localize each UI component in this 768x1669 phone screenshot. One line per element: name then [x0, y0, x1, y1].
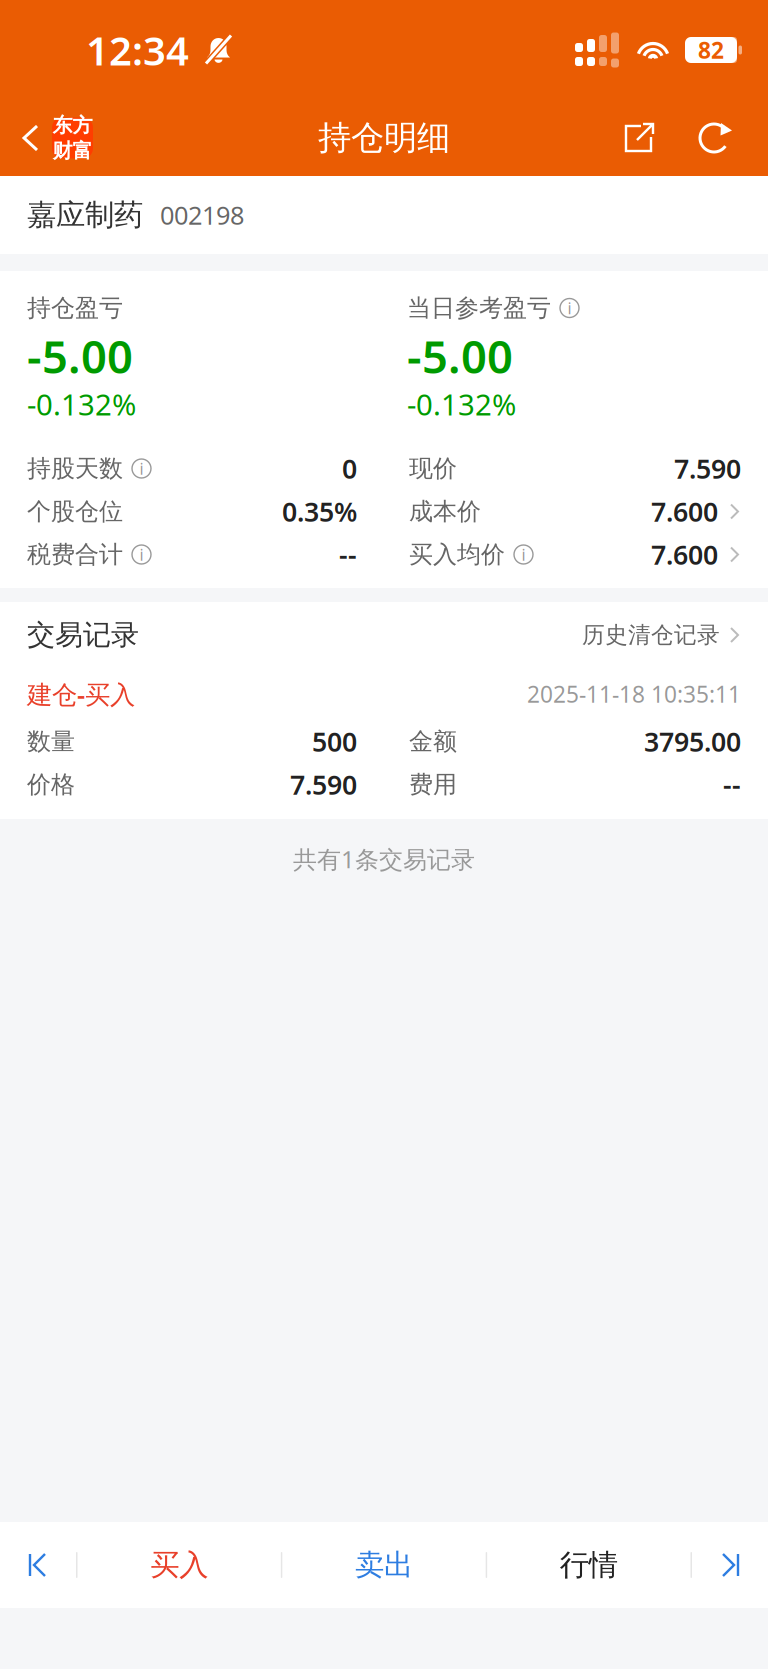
staticText: 0 [342, 451, 357, 486]
staticText: 82 [698, 35, 724, 65]
staticText: i [521, 544, 525, 565]
staticText: 持仓盈亏 [27, 293, 123, 323]
staticText: 嘉应制药 [27, 197, 143, 233]
staticText: 价格 [27, 770, 75, 799]
staticText: 7.600 [651, 494, 718, 529]
staticText: 002198 [160, 198, 244, 232]
staticText: -5.00 [27, 326, 133, 386]
staticText: 财富 [52, 138, 92, 163]
staticText: 行情 [560, 1547, 618, 1583]
button[interactable]: 分享 [610, 100, 670, 176]
staticText: 卖出 [355, 1547, 413, 1583]
button[interactable]: 行情 [487, 1533, 690, 1597]
button[interactable]: 卖出 [282, 1533, 486, 1597]
staticText: i [139, 458, 143, 479]
staticText: 东方 [52, 113, 92, 137]
staticText: 金额 [409, 727, 457, 756]
staticText: 共有1条交易记录 [293, 843, 475, 875]
staticText: i [567, 297, 571, 319]
button[interactable]: 上一个 [0, 1533, 76, 1597]
staticText: -5.00 [407, 326, 513, 386]
staticText: i [139, 544, 143, 565]
staticText: 当日参考盈亏 [407, 293, 551, 323]
staticText: -- [339, 537, 357, 572]
staticText: 3795.00 [644, 724, 741, 759]
staticText: 数量 [27, 727, 75, 756]
staticText: 7.590 [674, 451, 741, 486]
staticText: 2025-11-18 10:35:11 [527, 679, 741, 709]
button[interactable]: 历史清仓记录 [582, 609, 741, 661]
staticText: -0.132% [407, 384, 516, 423]
staticText: 个股仓位 [27, 497, 123, 526]
staticText: 买入均价 [409, 540, 505, 569]
button[interactable]: 买入 [77, 1533, 281, 1597]
staticText: 0.35% [282, 494, 357, 529]
staticText: 历史清仓记录 [582, 621, 720, 649]
staticText: 持仓明细 [318, 117, 450, 158]
staticText: 费用 [409, 770, 457, 799]
button[interactable]: 返回 东方财富 [0, 100, 107, 176]
staticText: 交易记录 [27, 618, 139, 652]
button[interactable]: 下一个 [692, 1533, 768, 1597]
staticText: 持股天数 [27, 454, 123, 483]
staticText: 500 [312, 724, 357, 759]
staticText: 买入 [150, 1547, 208, 1583]
staticText: 7.590 [290, 767, 357, 802]
staticText: -0.132% [27, 384, 136, 423]
staticText: 成本价 [409, 497, 481, 526]
staticText: 现价 [409, 454, 457, 483]
staticText: 12:34 [86, 23, 189, 76]
button[interactable]: 刷新 [686, 100, 746, 176]
staticText: 建仓-买入 [27, 677, 135, 711]
staticText: 税费合计 [27, 540, 123, 569]
staticText: -- [723, 767, 741, 802]
staticText: 7.600 [651, 537, 718, 572]
